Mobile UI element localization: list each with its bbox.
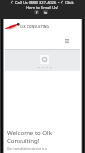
button[interactable]: O.K CONSULTING bbox=[3, 19, 81, 33]
staticText: Our consultation service is a bbox=[7, 147, 47, 151]
staticText: in bbox=[44, 10, 48, 14]
button[interactable]: Menu bbox=[64, 38, 70, 44]
staticText: Click bbox=[65, 0, 74, 5]
button[interactable]: Call Us (888) 327-4026 bbox=[11, 0, 74, 5]
staticText: Welcome to Olk bbox=[7, 128, 52, 136]
staticText: f bbox=[36, 10, 38, 14]
staticText: O.K CONSULTING bbox=[20, 24, 50, 29]
staticText: • bbox=[58, 0, 60, 5]
button[interactable]: Facebook bbox=[34, 10, 39, 14]
button[interactable]: Here to Email Us! bbox=[26, 5, 59, 10]
button[interactable]: LinkedIn bbox=[43, 10, 48, 14]
staticText: Call Us (888) 327-4026 bbox=[15, 0, 57, 5]
staticText: Consulting! bbox=[7, 136, 40, 144]
